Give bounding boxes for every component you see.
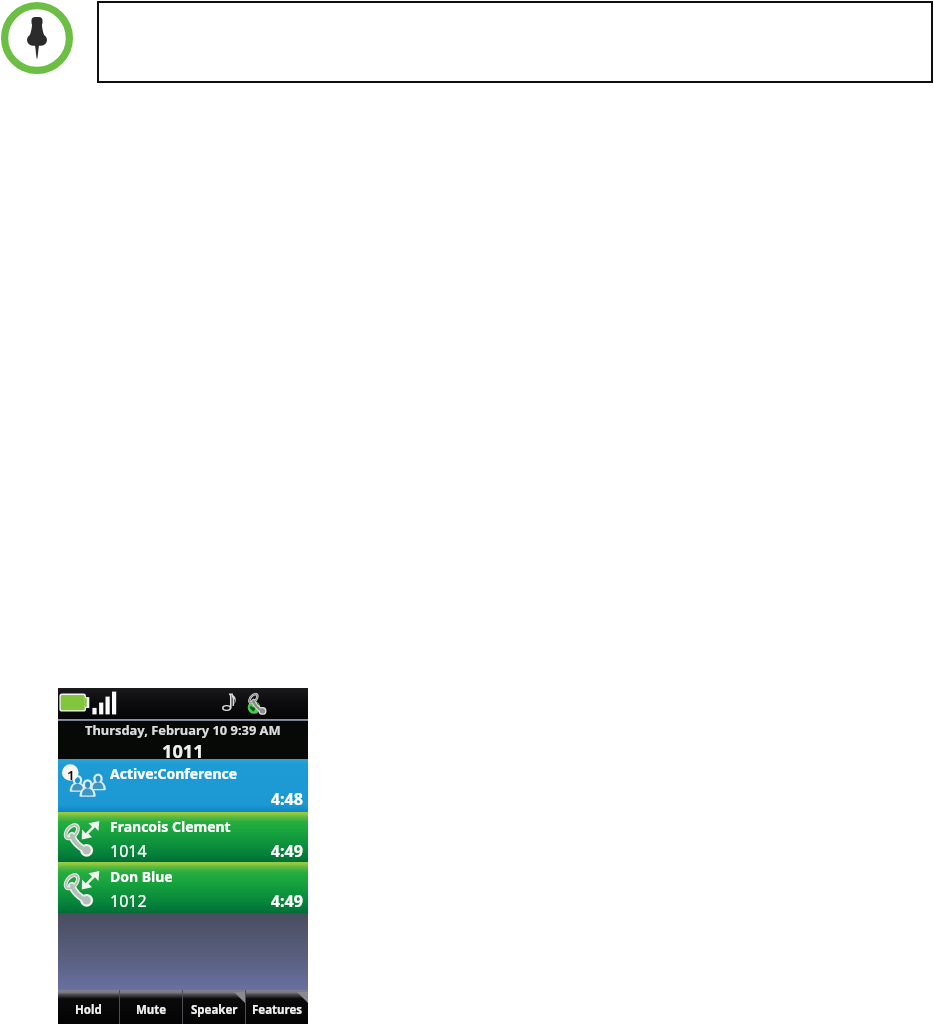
staticText: Hold — [75, 1002, 102, 1018]
button[interactable]: Hold — [58, 990, 119, 1024]
staticText: Features — [252, 1002, 303, 1018]
staticText: Thursday, February 10 9:39 AM — [85, 721, 281, 739]
button[interactable]: Don Blue — [58, 862, 308, 913]
staticText: 4:49 — [58, 890, 303, 912]
staticText: 1011 — [162, 739, 204, 759]
staticText: 1012 — [110, 890, 147, 912]
staticText: Don Blue — [110, 867, 173, 886]
other: Note — [1, 2, 73, 74]
staticText: Mute — [136, 1002, 167, 1018]
button[interactable]: Features — [246, 990, 308, 1024]
staticText: 1 — [67, 766, 75, 784]
button[interactable]: Francois Clement — [58, 812, 308, 862]
staticText: 1014 — [110, 840, 147, 862]
staticText: Active:Conference — [110, 764, 238, 783]
staticText: Francois Clement — [110, 817, 231, 836]
other: Ringer on — [222, 692, 236, 712]
button[interactable]: 1 — [58, 759, 308, 812]
staticText: Speaker — [191, 1002, 238, 1018]
staticText: 4:49 — [58, 840, 303, 862]
button[interactable]: Mute — [120, 990, 182, 1024]
other: Call active — [248, 690, 272, 714]
staticText: 4:48 — [58, 788, 303, 810]
button[interactable]: Speaker — [183, 990, 245, 1024]
